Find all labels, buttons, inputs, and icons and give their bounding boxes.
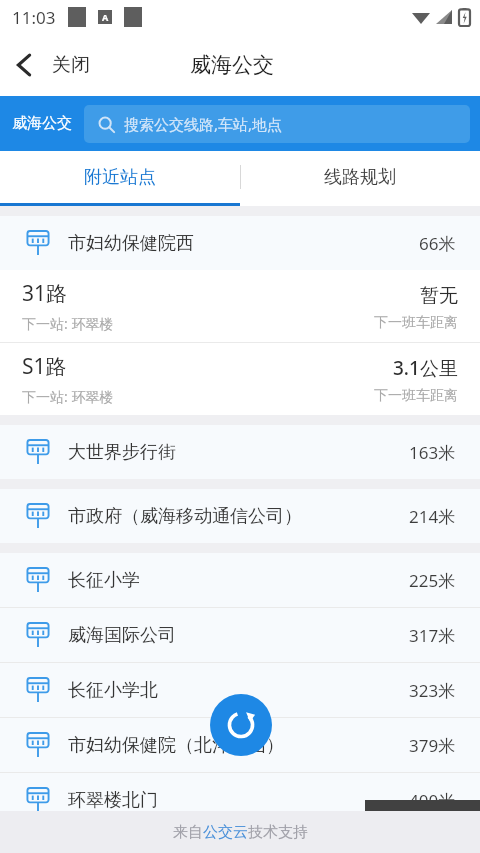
staticText: 66米 xyxy=(419,232,456,255)
button[interactable]: S1路 xyxy=(0,343,480,415)
staticText: 关闭 xyxy=(52,53,90,77)
staticText: 11:03 xyxy=(12,6,56,29)
button[interactable]: 搜索公交线路,车站,地点 xyxy=(84,105,470,143)
button[interactable]: 31路 xyxy=(0,270,480,342)
staticText: 市妇幼保健院西 xyxy=(68,232,419,255)
other: Back xyxy=(14,52,34,78)
button[interactable]: Refresh xyxy=(210,694,272,756)
button[interactable]: 市妇幼保健院西 xyxy=(0,216,480,270)
staticText: 附近站点 xyxy=(84,166,156,189)
staticText: 环翠楼北门 xyxy=(68,789,409,812)
staticText: 3.1公里 xyxy=(393,355,458,381)
staticText: S1路 xyxy=(22,352,393,381)
button[interactable]: 附近站点 xyxy=(0,151,240,203)
staticText: 400米 xyxy=(409,789,456,812)
staticText: 线路规划 xyxy=(324,166,396,189)
staticText: A xyxy=(102,11,109,23)
staticText: 225米 xyxy=(409,569,456,592)
staticText: 323米 xyxy=(409,679,456,702)
staticText: 市政府（威海移动通信公司） xyxy=(68,505,409,528)
staticText: 下一班车距离 xyxy=(374,314,458,332)
staticText: 威海公交 xyxy=(190,52,274,78)
staticText: 31路 xyxy=(22,279,420,308)
staticText: 暂无 xyxy=(420,284,458,308)
staticText: 下一班车距离 xyxy=(374,387,458,405)
staticText: 市妇幼保健院（北洋集团） xyxy=(68,734,409,757)
staticText: 379米 xyxy=(409,734,456,757)
staticText: 威海国际公司 xyxy=(68,624,409,647)
button[interactable]: 大世界步行街 xyxy=(0,425,480,479)
button[interactable]: 市政府（威海移动通信公司） xyxy=(0,489,480,543)
staticText: 搜索公交线路,车站,地点 xyxy=(124,114,283,134)
staticText: 下一站: 环翠楼 xyxy=(22,314,374,333)
button[interactable]: 环翠楼北门 xyxy=(0,773,480,827)
button[interactable]: Back xyxy=(0,34,100,96)
button[interactable]: 长征小学北 xyxy=(0,663,480,717)
button[interactable]: 威海公交 xyxy=(10,114,74,133)
staticText: 下一站: 环翠楼 xyxy=(22,387,374,406)
staticText: 来自公交云技术支持 xyxy=(173,823,308,842)
staticText: 大世界步行街 xyxy=(68,441,409,464)
staticText: 长征小学 xyxy=(68,569,409,592)
staticText: 317米 xyxy=(409,624,456,647)
staticText: 214米 xyxy=(409,505,456,528)
staticText: 163米 xyxy=(409,441,456,464)
button[interactable]: 长征小学 xyxy=(0,553,480,607)
button[interactable]: 线路规划 xyxy=(240,151,480,203)
button[interactable]: 威海国际公司 xyxy=(0,608,480,662)
button[interactable]: 市妇幼保健院（北洋集团） xyxy=(0,718,480,772)
staticText: 威海公交 xyxy=(12,114,72,133)
staticText: 长征小学北 xyxy=(68,679,409,702)
